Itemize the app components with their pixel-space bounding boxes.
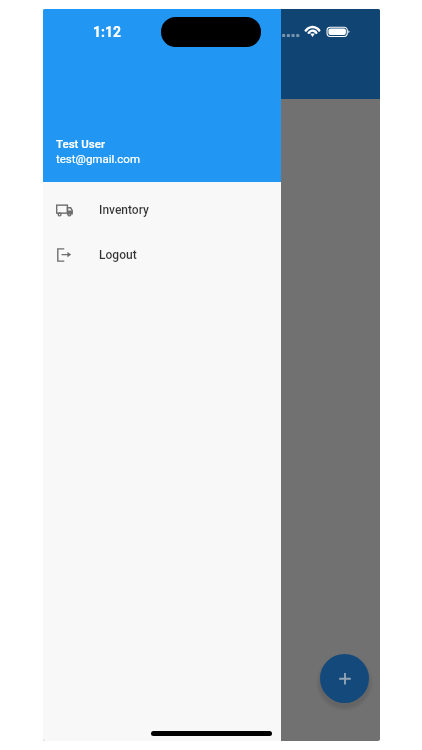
button[interactable]: Add [320,654,369,703]
staticText: Test User [56,137,105,150]
staticText: Logout [99,248,137,262]
staticText: 1:12 [93,24,122,40]
button[interactable]: Inventory [43,187,281,232]
button[interactable]: Logout [43,232,281,277]
staticText: test@gmail.com [56,152,140,165]
staticText: Inventory [99,203,149,217]
